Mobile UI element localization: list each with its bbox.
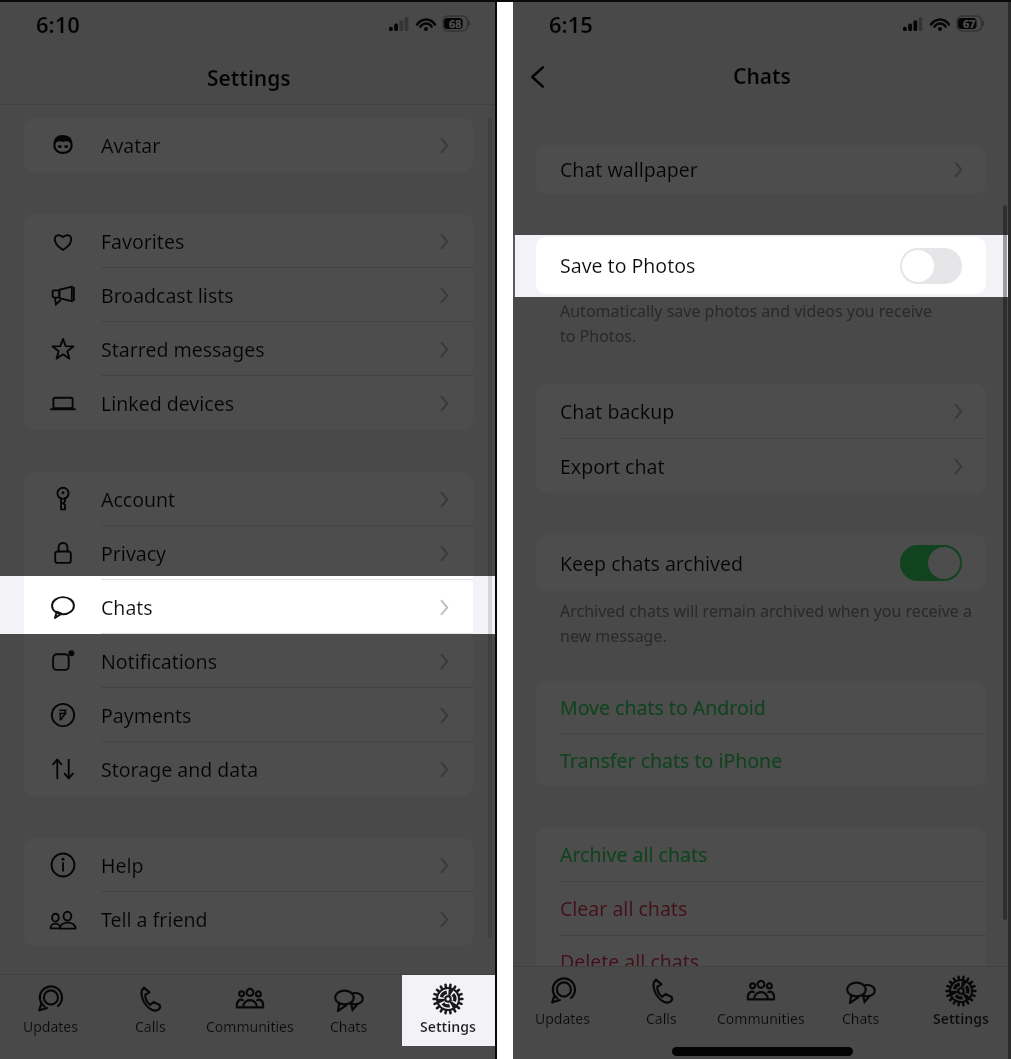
button[interactable]: Settings [398, 975, 497, 1059]
staticText: Updates [23, 1017, 78, 1036]
button[interactable]: Linked devices [24, 376, 473, 430]
staticText: Save to Photos [560, 252, 696, 279]
button[interactable]: Chat backup [536, 384, 986, 438]
button[interactable]: Tell a friend [24, 892, 473, 946]
staticText: Chats [101, 594, 153, 621]
button[interactable]: Avatar [24, 118, 473, 172]
staticText: Communities [206, 1017, 294, 1036]
staticText: Broadcast lists [101, 282, 234, 309]
staticText: Notifications [101, 648, 217, 675]
staticText: Clear all chats [560, 895, 688, 922]
button[interactable]: Archive all chats [536, 828, 986, 881]
staticText: Account [101, 486, 176, 513]
staticText: Archive all chats [560, 841, 708, 868]
staticText: Calls [646, 1009, 677, 1028]
button[interactable]: Updates [513, 967, 612, 1059]
staticText: Updates [535, 1009, 590, 1028]
button[interactable]: Communities [200, 975, 299, 1059]
button[interactable]: Starred messages [24, 322, 473, 376]
staticText: Chat wallpaper [560, 156, 698, 183]
button[interactable]: Save to Photos [536, 237, 986, 294]
button[interactable]: Chats [811, 967, 911, 1059]
staticText: 67 [963, 16, 976, 30]
staticText: Settings [933, 1009, 989, 1028]
button[interactable]: Keep chats archived, on [900, 545, 962, 581]
staticText: Communities [717, 1009, 805, 1028]
button[interactable]: Storage and data [24, 742, 473, 796]
staticText: Payments [101, 702, 192, 729]
staticText: Tell a friend [101, 906, 208, 933]
staticText: Export chat [560, 453, 665, 480]
button[interactable]: Clear all chats [536, 882, 986, 935]
button[interactable]: Keep chats archived [536, 535, 986, 591]
staticText: Favorites [101, 228, 185, 255]
button[interactable]: Settings [911, 967, 1011, 1059]
staticText: 6:15 [549, 9, 593, 39]
staticText: Archived chats will remain archived when… [560, 600, 973, 646]
button[interactable]: Chat wallpaper [536, 145, 986, 194]
staticText: Keep chats archived [560, 550, 743, 577]
staticText: Transfer chats to iPhone [560, 747, 783, 774]
button[interactable]: Save to Photos, off [900, 248, 962, 284]
button[interactable]: Chats [24, 580, 473, 634]
button[interactable]: Favorites [24, 214, 473, 268]
button[interactable]: Communities [711, 967, 811, 1059]
button[interactable]: Notifications [24, 634, 473, 688]
staticText: Starred messages [101, 336, 265, 363]
button[interactable]: Calls [612, 967, 711, 1059]
button[interactable]: Delete all chats [536, 936, 986, 987]
button[interactable]: Transfer chats to iPhone [536, 734, 986, 786]
button[interactable]: Help [24, 838, 473, 892]
staticText: Chats [733, 62, 791, 91]
staticText: Chats [330, 1017, 368, 1036]
staticText: 6:10 [36, 9, 80, 39]
button[interactable]: Payments [24, 688, 473, 742]
button[interactable]: Account [24, 472, 473, 526]
staticText: Avatar [101, 132, 161, 159]
staticText: Chats [842, 1009, 880, 1028]
staticText: Delete all chats [560, 948, 700, 975]
staticText: Automatically save photos and videos you… [560, 300, 932, 346]
staticText: Chat backup [560, 398, 675, 425]
button[interactable]: Export chat [536, 439, 986, 493]
staticText: Settings [420, 1017, 476, 1036]
button[interactable]: Move chats to Android [536, 681, 986, 733]
staticText: 68 [449, 16, 462, 30]
staticText: Settings [207, 64, 291, 93]
staticText: Move chats to Android [560, 694, 766, 721]
button[interactable]: Privacy [24, 526, 473, 580]
button[interactable]: Back [516, 55, 560, 99]
staticText: Storage and data [101, 756, 259, 783]
staticText: Linked devices [101, 390, 235, 417]
button[interactable]: Updates [0, 975, 100, 1059]
staticText: Privacy [101, 540, 167, 567]
button[interactable]: Calls [100, 975, 200, 1059]
button[interactable]: Chats [299, 975, 398, 1059]
button[interactable]: Broadcast lists [24, 268, 473, 322]
staticText: Calls [135, 1017, 166, 1036]
staticText: Help [101, 852, 144, 879]
